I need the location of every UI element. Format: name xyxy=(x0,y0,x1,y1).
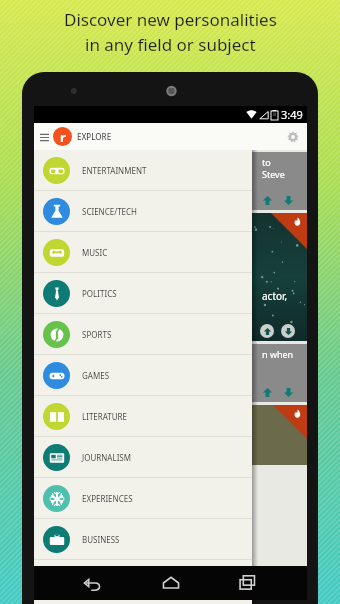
button[interactable]: EXPERIENCES xyxy=(34,478,252,519)
staticText: SCIENCE/TECH xyxy=(82,206,138,217)
staticText: BUSINESS xyxy=(82,534,120,545)
staticText: LITERATURE xyxy=(82,411,128,422)
button[interactable]: MUSIC xyxy=(34,232,252,273)
button[interactable]: ENTERTAINMENT xyxy=(34,150,252,191)
button[interactable]: to xyxy=(34,152,307,210)
staticText: EXPLORE xyxy=(77,131,112,142)
staticText: Steve xyxy=(262,168,285,180)
button[interactable]: Settings xyxy=(282,126,304,148)
staticText: JOURNALISM xyxy=(82,452,131,463)
button[interactable]: GAMES xyxy=(34,355,252,396)
staticText: GAMES xyxy=(82,370,110,381)
button[interactable]: Open navigation menu xyxy=(37,130,51,144)
button[interactable] xyxy=(34,405,307,465)
staticText: POLITICS xyxy=(82,288,117,299)
staticText: SPORTS xyxy=(82,329,112,340)
staticText: actor, xyxy=(262,289,288,303)
button[interactable]: JOURNALISM xyxy=(34,437,252,478)
button[interactable]: BUSINESS xyxy=(34,519,252,560)
staticText: EXPERIENCES xyxy=(82,493,133,504)
button[interactable]: actor, xyxy=(34,213,307,341)
button[interactable]: Home xyxy=(152,566,190,600)
staticText: 3:49 xyxy=(281,107,303,122)
button[interactable]: LITERATURE xyxy=(34,396,252,437)
button[interactable]: SPORTS xyxy=(34,314,252,355)
button[interactable]: Recent apps xyxy=(229,566,267,600)
button[interactable]: Downvote xyxy=(281,324,295,338)
button[interactable]: SCIENCE/TECH xyxy=(34,191,252,232)
staticText: ENTERTAINMENT xyxy=(82,165,147,176)
staticText: to xyxy=(262,156,271,168)
staticText: r xyxy=(60,128,66,146)
button[interactable]: n when xyxy=(34,344,307,402)
staticText: Discover new personalities xyxy=(64,8,277,31)
staticText: in any field or subject xyxy=(85,33,256,56)
button[interactable]: r xyxy=(53,127,112,146)
button[interactable]: Back xyxy=(74,566,112,600)
staticText: MUSIC xyxy=(82,247,108,258)
staticText: n when xyxy=(262,348,294,360)
button[interactable]: Upvote xyxy=(260,324,274,338)
button[interactable]: POLITICS xyxy=(34,273,252,314)
